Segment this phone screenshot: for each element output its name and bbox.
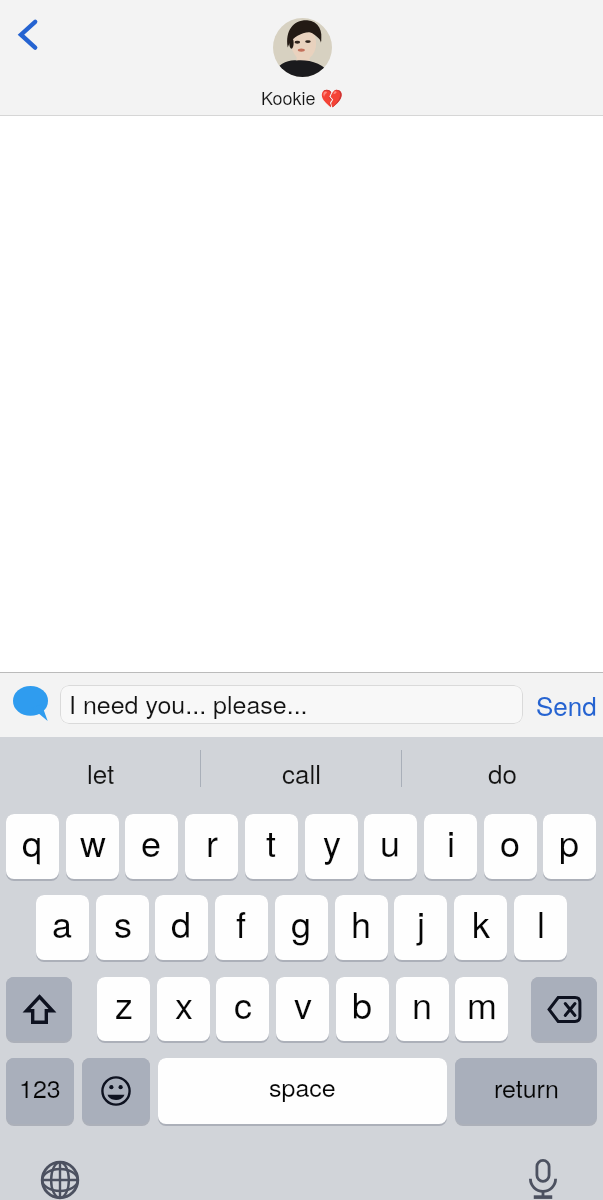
staticText: Send <box>536 686 597 723</box>
button[interactable]: Dictation <box>521 1156 565 1200</box>
button[interactable]: r <box>185 814 238 879</box>
button[interactable]: f <box>215 895 268 960</box>
button[interactable]: Send <box>531 680 601 729</box>
staticText: m <box>467 978 497 1030</box>
button[interactable]: m <box>455 977 508 1041</box>
staticText: x <box>175 978 193 1030</box>
staticText: y <box>323 816 341 868</box>
staticText: I need you... please... <box>69 685 308 721</box>
staticText: r <box>206 816 218 868</box>
button[interactable]: h <box>335 895 388 960</box>
button[interactable]: 123 <box>6 1058 74 1124</box>
button[interactable]: l <box>514 895 567 960</box>
staticText: a <box>52 897 73 949</box>
staticText: l <box>537 897 545 949</box>
staticText: let <box>87 754 115 791</box>
button[interactable]: d <box>155 895 208 960</box>
staticText: t <box>266 816 277 868</box>
button[interactable]: c <box>216 977 269 1041</box>
staticText: n <box>412 978 433 1030</box>
staticText: o <box>500 816 521 868</box>
button[interactable]: y <box>305 814 358 879</box>
staticText: return <box>494 1069 559 1105</box>
button[interactable]: u <box>364 814 417 879</box>
button[interactable]: j <box>394 895 447 960</box>
staticText: 123 <box>19 1069 61 1105</box>
button[interactable]: call <box>201 737 402 807</box>
button[interactable]: space <box>158 1058 447 1124</box>
staticText: h <box>351 897 372 949</box>
staticText: b <box>352 978 373 1030</box>
button[interactable]: e <box>125 814 178 879</box>
button[interactable]: w <box>66 814 119 879</box>
staticText: j <box>417 897 425 949</box>
button[interactable]: v <box>276 977 329 1041</box>
button[interactable]: s <box>96 895 149 960</box>
staticText: v <box>294 978 312 1030</box>
staticText: k <box>472 897 490 949</box>
button[interactable]: x <box>157 977 210 1041</box>
button[interactable]: n <box>396 977 449 1041</box>
button[interactable]: g <box>275 895 328 960</box>
button[interactable]: do <box>402 737 603 807</box>
button[interactable]: b <box>336 977 389 1041</box>
button[interactable]: let <box>0 737 201 807</box>
staticText: c <box>234 978 252 1030</box>
button[interactable]: Backspace <box>531 977 597 1041</box>
staticText: do <box>488 754 517 791</box>
staticText: q <box>22 816 43 868</box>
staticText: u <box>380 816 401 868</box>
button[interactable]: Change keyboard <box>38 1158 82 1200</box>
staticText: s <box>114 897 132 949</box>
button[interactable]: t <box>245 814 298 879</box>
staticText: d <box>171 897 192 949</box>
button[interactable]: q <box>6 814 59 879</box>
button[interactable]: z <box>97 977 150 1041</box>
staticText: i <box>447 816 455 868</box>
button[interactable]: Shift <box>6 977 72 1041</box>
button[interactable]: return <box>455 1058 597 1124</box>
staticText: f <box>236 897 247 949</box>
staticText: Kookie 💔 <box>261 84 343 110</box>
button[interactable]: o <box>484 814 537 879</box>
button[interactable]: i <box>424 814 477 879</box>
button[interactable]: a <box>36 895 89 960</box>
staticText: g <box>291 897 312 949</box>
staticText: z <box>115 978 133 1030</box>
button[interactable]: Apps <box>8 681 53 726</box>
button[interactable]: Emoji <box>82 1058 150 1124</box>
staticText: call <box>282 754 322 791</box>
button[interactable]: k <box>454 895 507 960</box>
staticText: e <box>141 816 162 868</box>
button[interactable]: I need you... please... <box>60 685 523 724</box>
staticText: w <box>80 816 106 868</box>
staticText: p <box>559 816 580 868</box>
staticText: space <box>269 1068 336 1104</box>
button[interactable]: p <box>543 814 596 879</box>
button[interactable]: Back <box>7 13 50 56</box>
